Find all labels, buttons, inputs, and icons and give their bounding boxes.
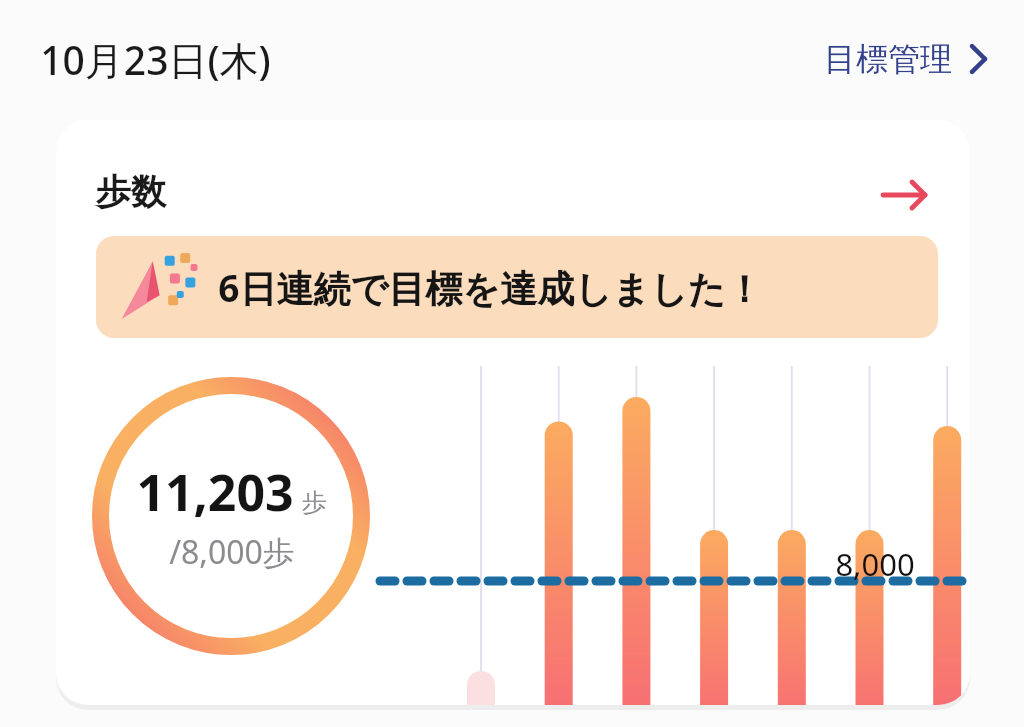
staticText: 6日連続で目標を達成しました！ bbox=[218, 262, 763, 313]
staticText: 歩 bbox=[302, 487, 327, 518]
button[interactable]: 歩数 bbox=[56, 120, 970, 705]
staticText: 10月23日(木) bbox=[40, 33, 271, 86]
staticText: 8,000 bbox=[835, 543, 915, 585]
button[interactable]: 歩数の詳細を見る bbox=[871, 162, 937, 228]
button[interactable]: 6日連続で目標を達成しました！ bbox=[96, 236, 938, 338]
staticText: 11,203 bbox=[136, 458, 294, 526]
staticText: 目標管理 bbox=[824, 39, 952, 79]
staticText: 歩数 bbox=[96, 170, 166, 214]
staticText: /8,000歩 bbox=[169, 530, 295, 574]
button[interactable]: 目標管理 bbox=[816, 31, 996, 87]
